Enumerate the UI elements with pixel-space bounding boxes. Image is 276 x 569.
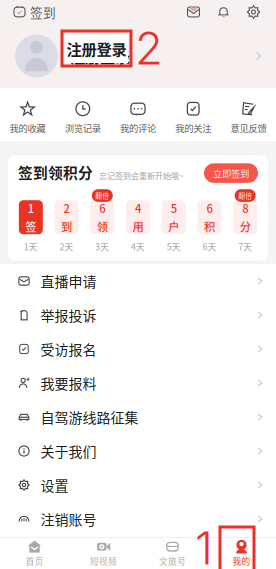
button[interactable]: 直播申请 (0, 264, 276, 298)
staticText: 7天 (238, 240, 252, 253)
button[interactable]: 签到 (14, 0, 56, 25)
staticText: 立即签到 (213, 166, 249, 180)
staticText: 浏览记录 (65, 121, 101, 135)
staticText: 领 (97, 218, 108, 235)
staticText: 意见反馈 (230, 121, 266, 135)
staticText: 2天 (60, 240, 74, 253)
button[interactable]: 我的关注 (166, 88, 221, 141)
button[interactable]: 首页 (0, 537, 69, 569)
button[interactable]: 自驾游线路征集 (0, 400, 276, 434)
staticText: 1 (195, 521, 213, 569)
staticText: 文旅号 (159, 555, 186, 567)
staticText: 6 (99, 200, 105, 216)
button[interactable]: 文旅号 (138, 537, 207, 569)
button[interactable]: 注销账号 (0, 502, 276, 536)
staticText: 直播申请 (40, 271, 96, 291)
button[interactable]: 浏览记录 (55, 88, 110, 141)
button[interactable]: 立即签到 (204, 163, 258, 183)
staticText: 4 (135, 200, 141, 216)
staticText: 1 (28, 200, 34, 216)
button[interactable]: 意见反馈 (221, 88, 276, 141)
button[interactable]: 受访报名 (0, 332, 276, 366)
staticText: 关于我们 (40, 441, 96, 461)
staticText: 签到领积分 (18, 162, 93, 183)
staticText: 注册登录 (66, 37, 126, 60)
button[interactable]: 设置 (0, 468, 276, 502)
staticText: 注销账号 (40, 509, 96, 529)
button[interactable]: 关于我们 (0, 434, 276, 468)
staticText: 分 (240, 218, 251, 235)
staticText: 自驾游线路征集 (40, 407, 138, 427)
staticText: 户 (168, 218, 179, 235)
staticText: 用 (132, 218, 143, 235)
staticText: 首页 (25, 555, 43, 567)
staticText: 翻倍 (238, 191, 252, 200)
staticText: 举报投诉 (40, 305, 96, 325)
staticText: 积 (204, 218, 215, 235)
staticText: 忘记签到会重新开始哦~ (99, 170, 183, 181)
button[interactable]: 消息 (185, 3, 202, 20)
button[interactable]: 我的收藏 (0, 88, 55, 141)
button[interactable]: 通知 (215, 3, 232, 20)
button[interactable]: 我的评论 (110, 88, 166, 141)
staticText: 6 (206, 200, 212, 216)
staticText: 签 (25, 218, 36, 235)
staticText: 1天 (24, 240, 38, 253)
staticText: 签到 (30, 3, 56, 21)
staticText: 8 (242, 200, 248, 216)
button[interactable]: 我要报料 (0, 366, 276, 400)
button[interactable]: 短视频 (69, 537, 138, 569)
staticText: 翻倍 (95, 191, 109, 200)
staticText: 受访报名 (40, 339, 96, 359)
staticText: 3天 (95, 240, 109, 253)
staticText: 注册登录 (70, 45, 130, 67)
staticText: 到 (61, 218, 72, 235)
button[interactable]: 设置 (245, 3, 262, 20)
staticText: 4天 (131, 240, 145, 253)
staticText: 5天 (167, 240, 181, 253)
staticText: 我要报料 (40, 373, 96, 393)
staticText: 6天 (202, 240, 216, 253)
staticText: 我的评论 (120, 121, 156, 135)
staticText: 我的 (232, 555, 250, 567)
staticText: 短视频 (90, 555, 117, 567)
button[interactable]: 注册登录 (0, 24, 276, 88)
staticText: 我的关注 (175, 121, 211, 135)
staticText: 2 (135, 21, 163, 75)
staticText: 5 (171, 200, 177, 216)
staticText: 我的收藏 (10, 121, 46, 135)
staticText: 2 (64, 200, 70, 216)
button[interactable]: 我的 (207, 537, 276, 569)
button[interactable]: 举报投诉 (0, 298, 276, 332)
staticText: 设置 (40, 475, 68, 495)
